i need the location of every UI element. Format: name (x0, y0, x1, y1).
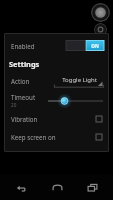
button[interactable]: Toggle Light (54, 74, 104, 88)
staticText: ON (91, 43, 99, 49)
button[interactable]: Enabled (4, 37, 109, 54)
button[interactable]: Recents (77, 174, 107, 200)
staticText: Settings (9, 59, 40, 69)
button[interactable]: Action (4, 72, 109, 89)
button[interactable]: Back (6, 174, 36, 200)
button[interactable]: ON (66, 40, 104, 51)
button[interactable]: Settings (94, 23, 107, 36)
staticText: Keep screen on (11, 133, 56, 141)
staticText: Toggle Light (62, 76, 97, 84)
button[interactable]: Home (42, 174, 72, 200)
button[interactable]: Timeout (4, 91, 109, 110)
staticText: 20 (11, 102, 17, 108)
button[interactable]: Keep screen on (4, 130, 109, 144)
staticText: Action (11, 77, 30, 85)
staticText: Vibration (11, 115, 38, 123)
button[interactable]: Capture (91, 3, 110, 22)
button[interactable]: Vibration (4, 112, 109, 126)
staticText: Enabled (11, 42, 35, 50)
button[interactable] (47, 95, 104, 107)
staticText: Timeout (11, 93, 36, 101)
